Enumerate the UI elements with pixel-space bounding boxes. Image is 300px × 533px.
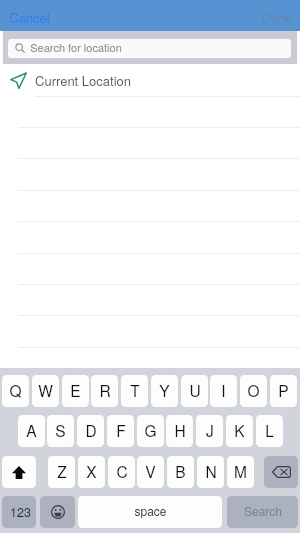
staticText: S (55, 419, 66, 441)
staticText: Done (261, 8, 293, 27)
staticText: X (86, 460, 97, 482)
staticText: R (99, 379, 111, 401)
button[interactable]: V (137, 456, 164, 488)
button[interactable]: Current Location (0, 64, 300, 96)
staticText: C (116, 460, 128, 482)
button[interactable]: B (167, 456, 194, 488)
button[interactable]: Y (151, 375, 178, 407)
button[interactable]: T (121, 375, 148, 407)
staticText: K (234, 419, 245, 441)
staticText: B (175, 460, 186, 482)
staticText: E (70, 379, 81, 401)
staticText: N (205, 460, 217, 482)
staticText: Z (57, 460, 67, 482)
button[interactable]: M (227, 456, 254, 488)
button[interactable]: Z (48, 456, 75, 488)
button[interactable]: Q (2, 375, 29, 407)
staticText: space (134, 502, 167, 519)
staticText: W (38, 379, 53, 401)
staticText: Search (244, 502, 282, 519)
button[interactable]: W (32, 375, 59, 407)
staticText: J (206, 419, 214, 441)
button[interactable]: L (256, 415, 283, 447)
button[interactable]: H (166, 415, 193, 447)
button[interactable]: S (47, 415, 74, 447)
staticText: D (85, 419, 97, 441)
button[interactable]: X (78, 456, 105, 488)
staticText: G (144, 419, 157, 441)
staticText: A (26, 419, 37, 441)
staticText: Y (159, 379, 170, 401)
staticText: Search for location (30, 39, 122, 55)
staticText: Cancel (9, 8, 50, 27)
button[interactable]: U (181, 375, 208, 407)
staticText: U (189, 379, 201, 401)
staticText: F (116, 419, 126, 441)
staticText: H (174, 419, 186, 441)
button[interactable]: Backspace (264, 456, 298, 488)
button[interactable]: 123 (2, 496, 36, 528)
staticText: L (265, 419, 274, 441)
button[interactable]: Done (254, 3, 298, 28)
staticText: T (130, 379, 140, 401)
staticText: Current Location (35, 71, 131, 90)
button[interactable]: J (196, 415, 223, 447)
button[interactable]: I (210, 375, 237, 407)
button[interactable]: Shift (2, 456, 36, 488)
button[interactable]: N (197, 456, 224, 488)
button[interactable]: C (108, 456, 135, 488)
button[interactable]: F (107, 415, 134, 447)
button[interactable]: K (226, 415, 253, 447)
staticText: M (234, 460, 247, 482)
button[interactable]: O (240, 375, 267, 407)
button[interactable]: D (77, 415, 104, 447)
button[interactable]: Search for location (8, 39, 291, 58)
staticText: I (221, 379, 226, 401)
button[interactable]: Search (227, 496, 298, 528)
button[interactable]: space (78, 496, 222, 528)
staticText: V (145, 460, 156, 482)
button[interactable]: Emoji keyboard (40, 496, 75, 528)
staticText: P (278, 379, 289, 401)
button[interactable]: R (91, 375, 118, 407)
staticText: Q (9, 379, 22, 401)
button[interactable]: E (62, 375, 89, 407)
button[interactable]: G (137, 415, 164, 447)
staticText: O (247, 379, 260, 401)
staticText: 123 (10, 503, 31, 521)
button[interactable]: Cancel (3, 3, 57, 28)
button[interactable]: A (18, 415, 45, 447)
button[interactable]: P (270, 375, 297, 407)
